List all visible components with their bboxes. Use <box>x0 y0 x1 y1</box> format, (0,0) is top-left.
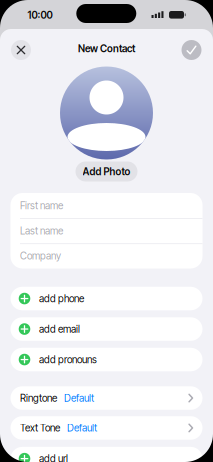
button[interactable]: add phone <box>10 287 202 310</box>
staticText: First name <box>20 200 63 212</box>
button[interactable]: add url <box>10 447 202 462</box>
button[interactable]: Add Photo <box>75 161 137 181</box>
button[interactable]: Text Tone <box>10 416 202 440</box>
button[interactable]: First name <box>10 193 202 218</box>
staticText: Default <box>67 422 97 434</box>
staticText: 10:00 <box>27 9 52 21</box>
staticText: add email <box>39 323 80 335</box>
staticText: Last name <box>20 225 63 237</box>
button[interactable]: Ringtone <box>10 386 202 410</box>
staticText: add phone <box>39 292 84 305</box>
button[interactable]: Company <box>10 243 202 268</box>
button[interactable]: add pronouns <box>10 348 202 371</box>
staticText: Company <box>20 250 61 262</box>
staticText: add pronouns <box>39 353 97 366</box>
button[interactable]: Cancel <box>11 40 31 60</box>
button[interactable]: Last name <box>10 218 202 243</box>
staticText: Default <box>64 392 94 404</box>
button[interactable]: add email <box>10 317 202 341</box>
button[interactable]: Done <box>181 40 201 60</box>
staticText: New Contact <box>78 42 135 55</box>
staticText: Ringtone <box>20 392 57 404</box>
staticText: Text Tone <box>20 422 60 434</box>
staticText: add url <box>39 453 68 462</box>
staticText: Add Photo <box>82 165 130 178</box>
